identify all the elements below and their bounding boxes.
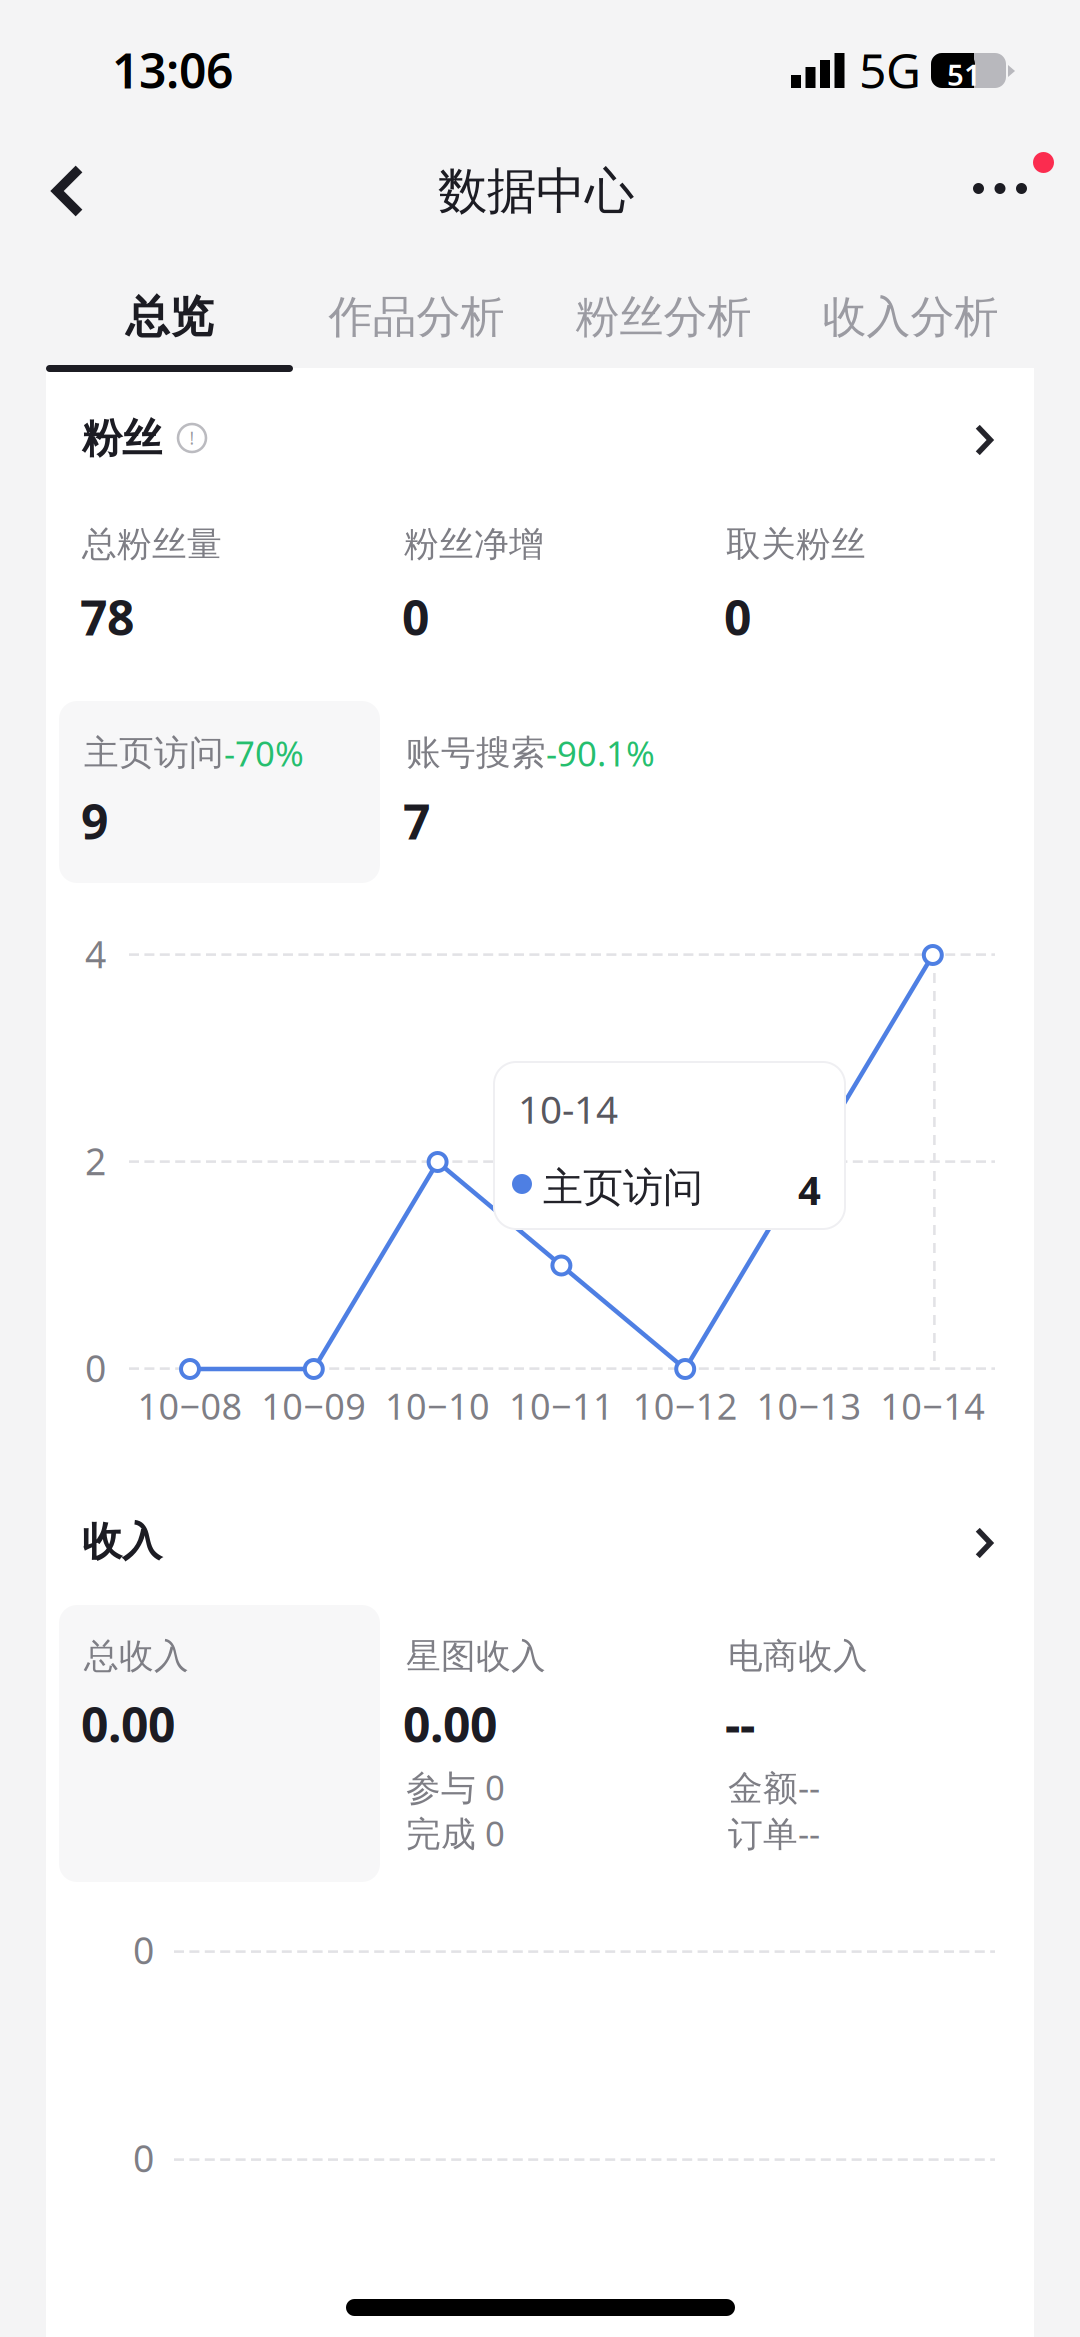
- staticText: 作品分析: [328, 290, 504, 344]
- staticText: -90.1%: [546, 730, 655, 776]
- staticText: 10−08: [137, 1382, 242, 1430]
- staticText: 0: [402, 585, 429, 649]
- staticText: 4: [85, 929, 106, 979]
- button[interactable]: 总收入: [59, 1605, 380, 1882]
- button[interactable]: 收入分析: [787, 252, 1034, 372]
- staticText: 参与 0: [406, 1764, 505, 1810]
- staticText: 主页访问: [543, 1163, 703, 1212]
- staticText: 4: [798, 1163, 821, 1216]
- staticText: 0: [85, 1343, 106, 1393]
- staticText: 78: [80, 585, 134, 649]
- button[interactable]: 粉丝: [46, 384, 1034, 502]
- staticText: 0: [133, 2133, 154, 2183]
- staticText: 10-14: [518, 1083, 618, 1134]
- button[interactable]: 总览: [46, 252, 293, 372]
- staticText: 0: [724, 585, 751, 649]
- staticText: 星图收入: [406, 1635, 546, 1678]
- button[interactable]: More: [953, 135, 1068, 245]
- staticText: 总粉丝量: [82, 523, 222, 566]
- staticText: 9: [81, 789, 108, 853]
- staticText: 收入: [82, 1517, 162, 1566]
- button[interactable]: 电商收入: [703, 1605, 1024, 1882]
- staticText: -70%: [224, 730, 304, 776]
- staticText: 10−09: [261, 1382, 366, 1430]
- staticText: --: [725, 1692, 755, 1756]
- staticText: 10−13: [756, 1382, 861, 1430]
- button[interactable]: 星图收入: [381, 1605, 702, 1882]
- button[interactable]: 作品分析: [293, 252, 540, 372]
- staticText: !: [189, 426, 194, 449]
- staticText: 0.00: [81, 1692, 175, 1756]
- button[interactable]: Back: [0, 138, 120, 248]
- staticText: 主页访问: [84, 732, 224, 774]
- staticText: 2: [85, 1136, 106, 1186]
- staticText: 粉丝分析: [575, 290, 751, 344]
- staticText: 电商收入: [728, 1635, 868, 1678]
- staticText: 13:06: [112, 38, 233, 102]
- staticText: 粉丝: [82, 414, 162, 463]
- staticText: 完成 0: [406, 1810, 505, 1856]
- staticText: 订单--: [728, 1810, 820, 1856]
- staticText: 总览: [125, 290, 213, 344]
- staticText: 7: [403, 789, 430, 853]
- staticText: 粉丝净增: [404, 523, 544, 566]
- button[interactable]: 账号搜索: [381, 701, 702, 883]
- button[interactable]: 主页访问: [59, 701, 380, 883]
- button[interactable]: 粉丝分析: [540, 252, 787, 372]
- staticText: 10−12: [633, 1382, 738, 1430]
- button[interactable]: 收入: [46, 1487, 1034, 1597]
- staticText: 数据中心: [438, 161, 634, 222]
- staticText: 5G: [859, 38, 921, 102]
- staticText: 10−10: [385, 1382, 490, 1430]
- staticText: 账号搜索: [406, 732, 546, 774]
- staticText: 0.00: [403, 1692, 497, 1756]
- staticText: 金额--: [728, 1764, 820, 1810]
- staticText: 10−14: [880, 1382, 985, 1430]
- staticText: 0: [133, 1925, 154, 1975]
- staticText: 取关粉丝: [726, 523, 866, 566]
- staticText: 收入分析: [822, 290, 998, 344]
- staticText: 总收入: [84, 1635, 189, 1678]
- staticText: 10−11: [509, 1382, 614, 1430]
- staticText: 51: [947, 55, 981, 94]
